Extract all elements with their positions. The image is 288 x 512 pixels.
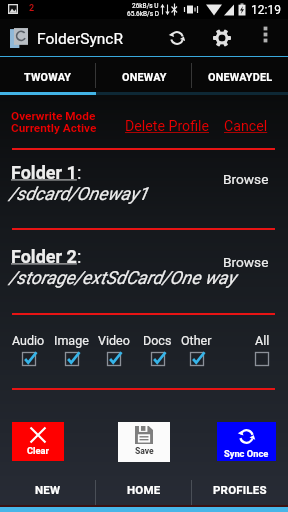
button[interactable]: NEW (0, 473, 96, 506)
staticText: /storage/extSdCard/One way (9, 267, 236, 288)
staticText: Docs (143, 333, 172, 348)
button[interactable]: Other (173, 333, 219, 368)
staticText: /sdcard/Oneway1 (9, 183, 148, 204)
button[interactable]: Browse (223, 254, 269, 270)
staticText: Sync Once (224, 448, 269, 459)
staticText: ONEWAYDEL (208, 71, 273, 84)
button[interactable]: ONEWAY (96, 57, 192, 92)
staticText: Currently Active (11, 121, 97, 135)
staticText: Other (181, 333, 212, 348)
button[interactable]: Sync Once (217, 422, 276, 461)
staticText: 12:19 (251, 3, 281, 17)
staticText: Delete Profile (125, 118, 210, 135)
staticText: Browse (223, 171, 269, 187)
button[interactable]: Image (48, 333, 94, 368)
staticText: Video (98, 333, 130, 348)
button[interactable]: Docs (134, 333, 180, 368)
staticText: 65.6kB/s D (127, 10, 159, 18)
button[interactable]: Save (118, 422, 170, 462)
button[interactable]: Sync (162, 23, 191, 52)
staticText: TWOWAY (24, 71, 72, 84)
staticText: NEW (35, 483, 61, 496)
button[interactable]: Cancel (224, 118, 268, 135)
button[interactable]: ONEWAYDEL (192, 57, 288, 92)
staticText: Clear (27, 445, 49, 456)
staticText: Audio (12, 333, 45, 348)
staticText: ONEWAY (122, 71, 167, 84)
staticText: 26kB/s U (132, 2, 159, 10)
staticText: FolderSyncR (37, 30, 123, 48)
staticText: Image (54, 333, 89, 348)
button[interactable]: Settings (207, 23, 236, 52)
staticText: Overwrite Mode (11, 109, 96, 123)
button[interactable]: Video (91, 333, 137, 368)
button[interactable]: Audio (5, 333, 51, 368)
staticText: HOME (127, 483, 161, 496)
staticText: All (255, 333, 270, 348)
button[interactable]: All (239, 333, 285, 368)
staticText: PROFILES (213, 483, 267, 496)
button[interactable]: HOME (96, 473, 192, 506)
button[interactable]: TWOWAY (0, 57, 96, 92)
staticText: Save (135, 446, 154, 456)
staticText: 2 (29, 3, 35, 14)
staticText: Browse (223, 254, 269, 270)
button[interactable]: PROFILES (192, 473, 288, 506)
staticText: Cancel (224, 118, 268, 135)
button[interactable]: More options (253, 22, 278, 47)
staticText: Folder 1: (11, 162, 82, 183)
button[interactable]: Clear (12, 422, 64, 461)
button[interactable]: Delete Profile (125, 118, 210, 135)
button[interactable]: Browse (223, 171, 269, 187)
staticText: Folder 2: (11, 246, 82, 267)
